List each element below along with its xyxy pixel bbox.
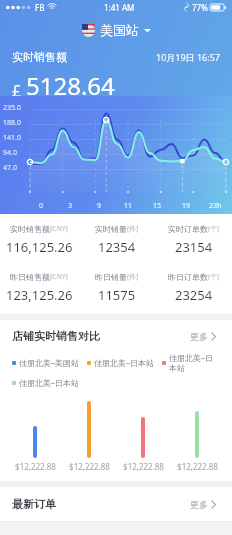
- staticText: 佳朋北美–美国站: [19, 357, 79, 368]
- staticText: 188.0: [3, 118, 21, 128]
- staticText: £: [12, 80, 22, 102]
- staticText: FB: [35, 2, 45, 13]
- button[interactable]: 更多: [186, 495, 220, 514]
- staticText: 23254: [175, 286, 213, 304]
- staticText: 佳朋北美–日本站: [169, 352, 220, 373]
- staticText: 今日: [204, 104, 220, 114]
- staticText: (CNY): [50, 224, 68, 234]
- staticText: 更多: [190, 331, 208, 342]
- staticText: 11: [124, 201, 133, 211]
- staticText: 0: [39, 201, 44, 211]
- staticText: 47.0: [3, 163, 17, 173]
- staticText: 昨日订单数: [168, 272, 208, 282]
- staticText: 实时销量: [95, 224, 127, 234]
- staticText: 141.0: [3, 133, 21, 143]
- staticText: 116,125.26: [6, 238, 73, 256]
- staticText: 1:41 AM: [104, 2, 135, 13]
- staticText: $12,222.88: [177, 461, 218, 472]
- button[interactable]: 更多: [186, 327, 220, 346]
- staticText: 最新订单: [12, 497, 56, 511]
- staticText: $12,222.88: [69, 461, 110, 472]
- staticText: 昨日销售额: [10, 272, 50, 282]
- button[interactable]: 实时订单数: [155, 224, 232, 256]
- staticText: 佳朋北美–日本站: [94, 357, 154, 368]
- staticText: 19: [182, 201, 191, 211]
- staticText: 23154: [175, 238, 213, 256]
- staticText: (CNY): [50, 272, 68, 282]
- staticText: 77%: [192, 2, 208, 13]
- staticText: 10月19日 16:57: [156, 51, 220, 63]
- staticText: 实时销售额: [12, 50, 67, 64]
- button[interactable]: 实时销量: [78, 224, 155, 256]
- staticText: 15: [153, 201, 162, 211]
- staticText: 更多: [190, 499, 208, 510]
- staticText: 单位:CNY: [12, 104, 42, 114]
- staticText: $12,222.88: [15, 461, 56, 472]
- staticText: 昨日: [171, 104, 187, 114]
- staticText: 12354: [98, 238, 136, 256]
- staticText: 3: [68, 201, 73, 211]
- staticText: (件): [127, 224, 139, 234]
- staticText: 5128.64: [26, 69, 115, 102]
- staticText: $12,222.88: [123, 461, 164, 472]
- button[interactable]: 昨日销售额: [0, 272, 78, 304]
- staticText: 23h: [209, 201, 222, 211]
- button[interactable]: 昨日销量: [78, 272, 155, 304]
- staticText: 11575: [98, 286, 136, 304]
- staticText: (件): [127, 272, 139, 282]
- button[interactable]: 美国站: [76, 20, 157, 40]
- staticText: (个): [208, 224, 220, 234]
- staticText: 美国站: [100, 22, 139, 38]
- button[interactable]: 昨日订单数: [155, 272, 232, 304]
- staticText: 实时销售额: [10, 224, 50, 234]
- staticText: 店铺实时销售对比: [12, 329, 100, 343]
- staticText: 9: [97, 201, 102, 211]
- button[interactable]: 实时销售额: [0, 224, 78, 256]
- staticText: 实时订单数: [168, 224, 208, 234]
- staticText: 235.0: [3, 103, 21, 113]
- staticText: 123,125.26: [6, 286, 73, 304]
- staticText: 94.0: [3, 148, 17, 158]
- staticText: (个): [208, 272, 220, 282]
- staticText: 昨日销量: [95, 272, 127, 282]
- staticText: 佳朋北美–日本站: [19, 377, 79, 388]
